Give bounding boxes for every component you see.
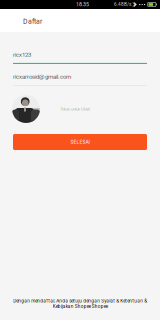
staticText: Tekan untuk Ubah <box>60 106 90 111</box>
staticText: SELESAI <box>70 139 89 145</box>
button[interactable]: Tekan untuk Ubah <box>0 95 160 123</box>
staticText: Daftar <box>23 17 42 25</box>
staticText: 18.35 <box>76 1 89 8</box>
staticText: ricxarrosid@gmail.com <box>13 73 71 80</box>
staticText: Dengan mendaftar, Anda setuju dengan Sya… <box>13 298 147 309</box>
staticText: 6.48B/s <box>114 2 131 7</box>
button[interactable]: SELESAI <box>13 134 147 150</box>
staticText: ricx123 <box>13 51 31 58</box>
